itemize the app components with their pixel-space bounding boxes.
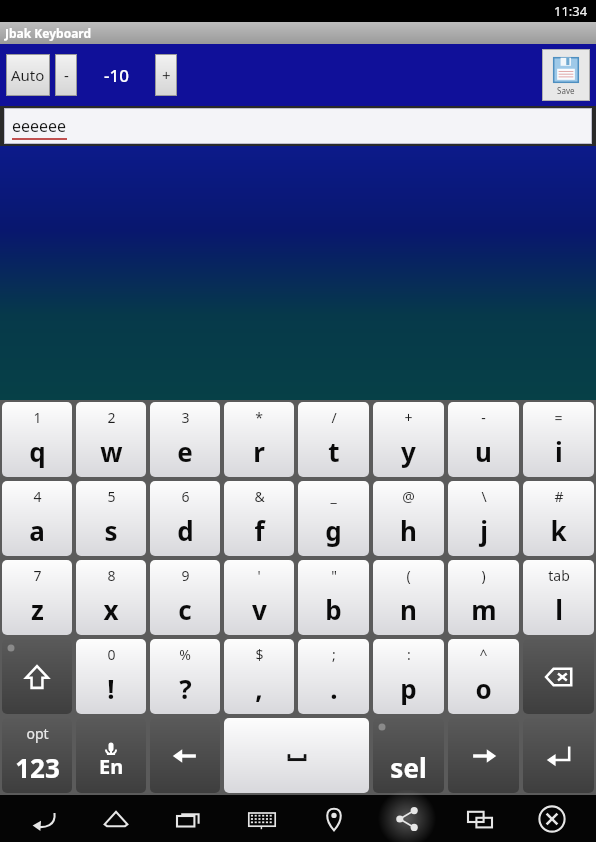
button[interactable]: Recents [160,795,218,842]
staticText: v [252,592,267,627]
button[interactable]: Shift [2,639,72,714]
button[interactable]: sel [373,718,444,793]
button[interactable]: p [373,639,444,714]
button[interactable]: Save [542,49,590,101]
staticText: j [480,513,488,548]
button[interactable]: t [298,402,369,477]
staticText: c [178,592,192,627]
staticText: b [325,592,342,627]
staticText: z [31,592,44,627]
button[interactable]: Right [448,718,519,793]
button[interactable]: q [2,402,72,477]
staticText: g [325,513,342,548]
staticText: + [404,408,413,427]
button[interactable]: f [224,481,294,556]
button[interactable]: Backspace [523,639,594,714]
button[interactable]: x [76,560,146,635]
button[interactable]: v [224,560,294,635]
staticText: ; [332,645,336,664]
staticText: 123 [15,750,60,785]
staticText: Auto [11,65,45,85]
button[interactable]: w [76,402,146,477]
button[interactable]: i [523,402,594,477]
staticText: 0 [107,645,116,664]
staticText: s [104,513,118,548]
button[interactable]: u [448,402,519,477]
staticText: tab [548,566,570,585]
staticText: . [330,671,338,706]
staticText: i [555,434,563,469]
button[interactable]: d [150,481,220,556]
staticText: % [179,645,191,664]
button[interactable]: m [448,560,519,635]
button[interactable]: e [150,402,220,477]
button[interactable]: Location [305,795,363,842]
button[interactable]: . [298,639,369,714]
button[interactable]: ? [150,639,220,714]
staticText: En [99,753,124,780]
button[interactable]: + [155,54,177,96]
staticText: 8 [107,566,116,585]
staticText: ( [406,566,411,585]
button[interactable]: , [224,639,294,714]
button[interactable]: Keyboard [233,795,291,842]
button[interactable]: Home [87,795,145,842]
button[interactable]: o [448,639,519,714]
button[interactable]: - [55,54,77,96]
button[interactable]: Enter [523,718,594,793]
button[interactable]: Close [523,795,581,842]
staticText: 11:34 [554,2,588,20]
staticText: Save [557,85,575,96]
button[interactable]: Auto [6,54,50,96]
staticText: / [331,408,337,427]
staticText: ' [257,566,261,585]
staticText: -10 [104,64,129,87]
staticText: , [255,671,263,706]
button[interactable]: g [298,481,369,556]
button[interactable]: 123 [2,718,72,793]
staticText: k [550,513,567,548]
button[interactable]: z [2,560,72,635]
staticText: - [64,65,69,85]
staticText: opt [26,724,49,743]
button[interactable]: Share [378,795,436,842]
button[interactable]: b [298,560,369,635]
button[interactable]: Window [451,795,509,842]
staticText: Jbak Keyboard [5,25,92,41]
staticText: ) [481,566,486,585]
button[interactable]: ! [76,639,146,714]
staticText: r [253,434,265,469]
staticText: ! [107,671,115,706]
button[interactable]: n [373,560,444,635]
staticText: 7 [33,566,42,585]
staticText: a [29,513,45,548]
staticText: m [471,592,497,627]
staticText: 4 [33,487,42,506]
staticText: n [400,592,417,627]
staticText: d [177,513,194,548]
staticText: sel [390,750,427,785]
staticText: : [407,645,411,664]
button[interactable]: c [150,560,220,635]
button[interactable]: y [373,402,444,477]
button[interactable]: a [2,481,72,556]
button[interactable]: Left [150,718,220,793]
button[interactable]: Voice input [76,718,146,793]
staticText: y [401,434,416,469]
button[interactable]: r [224,402,294,477]
staticText: 9 [181,566,190,585]
staticText: " [331,566,337,585]
button[interactable]: j [448,481,519,556]
staticText: o [475,671,492,706]
staticText: l [555,592,563,627]
button[interactable]: k [523,481,594,556]
button[interactable]: Space [224,718,369,793]
staticText: $ [255,645,264,664]
button[interactable]: eeeeee [4,108,592,144]
staticText: \ [481,487,487,506]
button[interactable]: l [523,560,594,635]
staticText: # [554,487,564,506]
button[interactable]: s [76,481,146,556]
button[interactable]: h [373,481,444,556]
button[interactable]: Back [15,795,73,842]
